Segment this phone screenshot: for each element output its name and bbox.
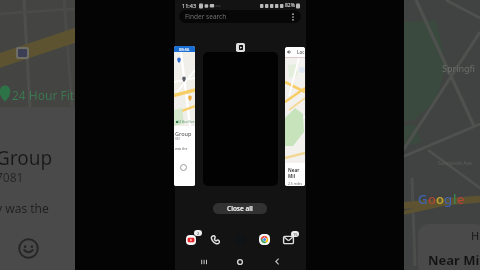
staticText: 09:56: [179, 47, 190, 52]
staticText: Loc: [297, 49, 305, 55]
staticText: Near Millb: [428, 251, 480, 269]
staticText: Group: [175, 130, 192, 137]
button[interactable]: Chrome: [259, 234, 270, 245]
staticText: 82%: [285, 2, 295, 9]
staticText: 11:43: [182, 2, 197, 9]
button[interactable]: YouTube: [186, 235, 196, 245]
button[interactable]: Recent apps: [192, 253, 216, 270]
staticText: Sunnyvale Ave: [438, 160, 472, 167]
staticText: Near Mil: [288, 167, 305, 179]
staticText: o: [436, 190, 444, 208]
button[interactable]: More options: [289, 10, 297, 23]
staticText: Finder search: [185, 12, 227, 21]
staticText: o: [428, 190, 436, 208]
staticText: 081: [175, 137, 181, 141]
button[interactable]: Mail: [283, 236, 294, 244]
staticText: 24 Hour Fitne: [178, 120, 195, 124]
button[interactable]: 09:56: [174, 46, 195, 186]
button[interactable]: Back: [265, 253, 289, 270]
button[interactable]: Phone: [210, 234, 221, 245]
staticText: H: [471, 228, 480, 243]
staticText: 7081: [0, 169, 24, 185]
staticText: was the: [175, 146, 188, 151]
staticText: g: [444, 190, 453, 208]
staticText: 2: [197, 231, 200, 236]
staticText: 2.5 miles: [288, 181, 303, 186]
staticText: Group: [0, 145, 53, 171]
button[interactable]: Loc: [285, 47, 305, 186]
staticText: v was the: [0, 200, 49, 216]
button[interactable]: Home: [228, 253, 252, 270]
button[interactable]: Close all: [213, 203, 267, 214]
button[interactable]: Finder search: [179, 10, 301, 23]
staticText: 24 Hour Fitnes: [12, 87, 95, 103]
staticText: e: [457, 190, 465, 208]
staticText: Close all: [227, 204, 253, 213]
staticText: G: [418, 190, 428, 208]
staticText: Springfi: [442, 62, 476, 74]
staticText: l: [453, 190, 457, 208]
staticText: 15: [293, 232, 298, 237]
